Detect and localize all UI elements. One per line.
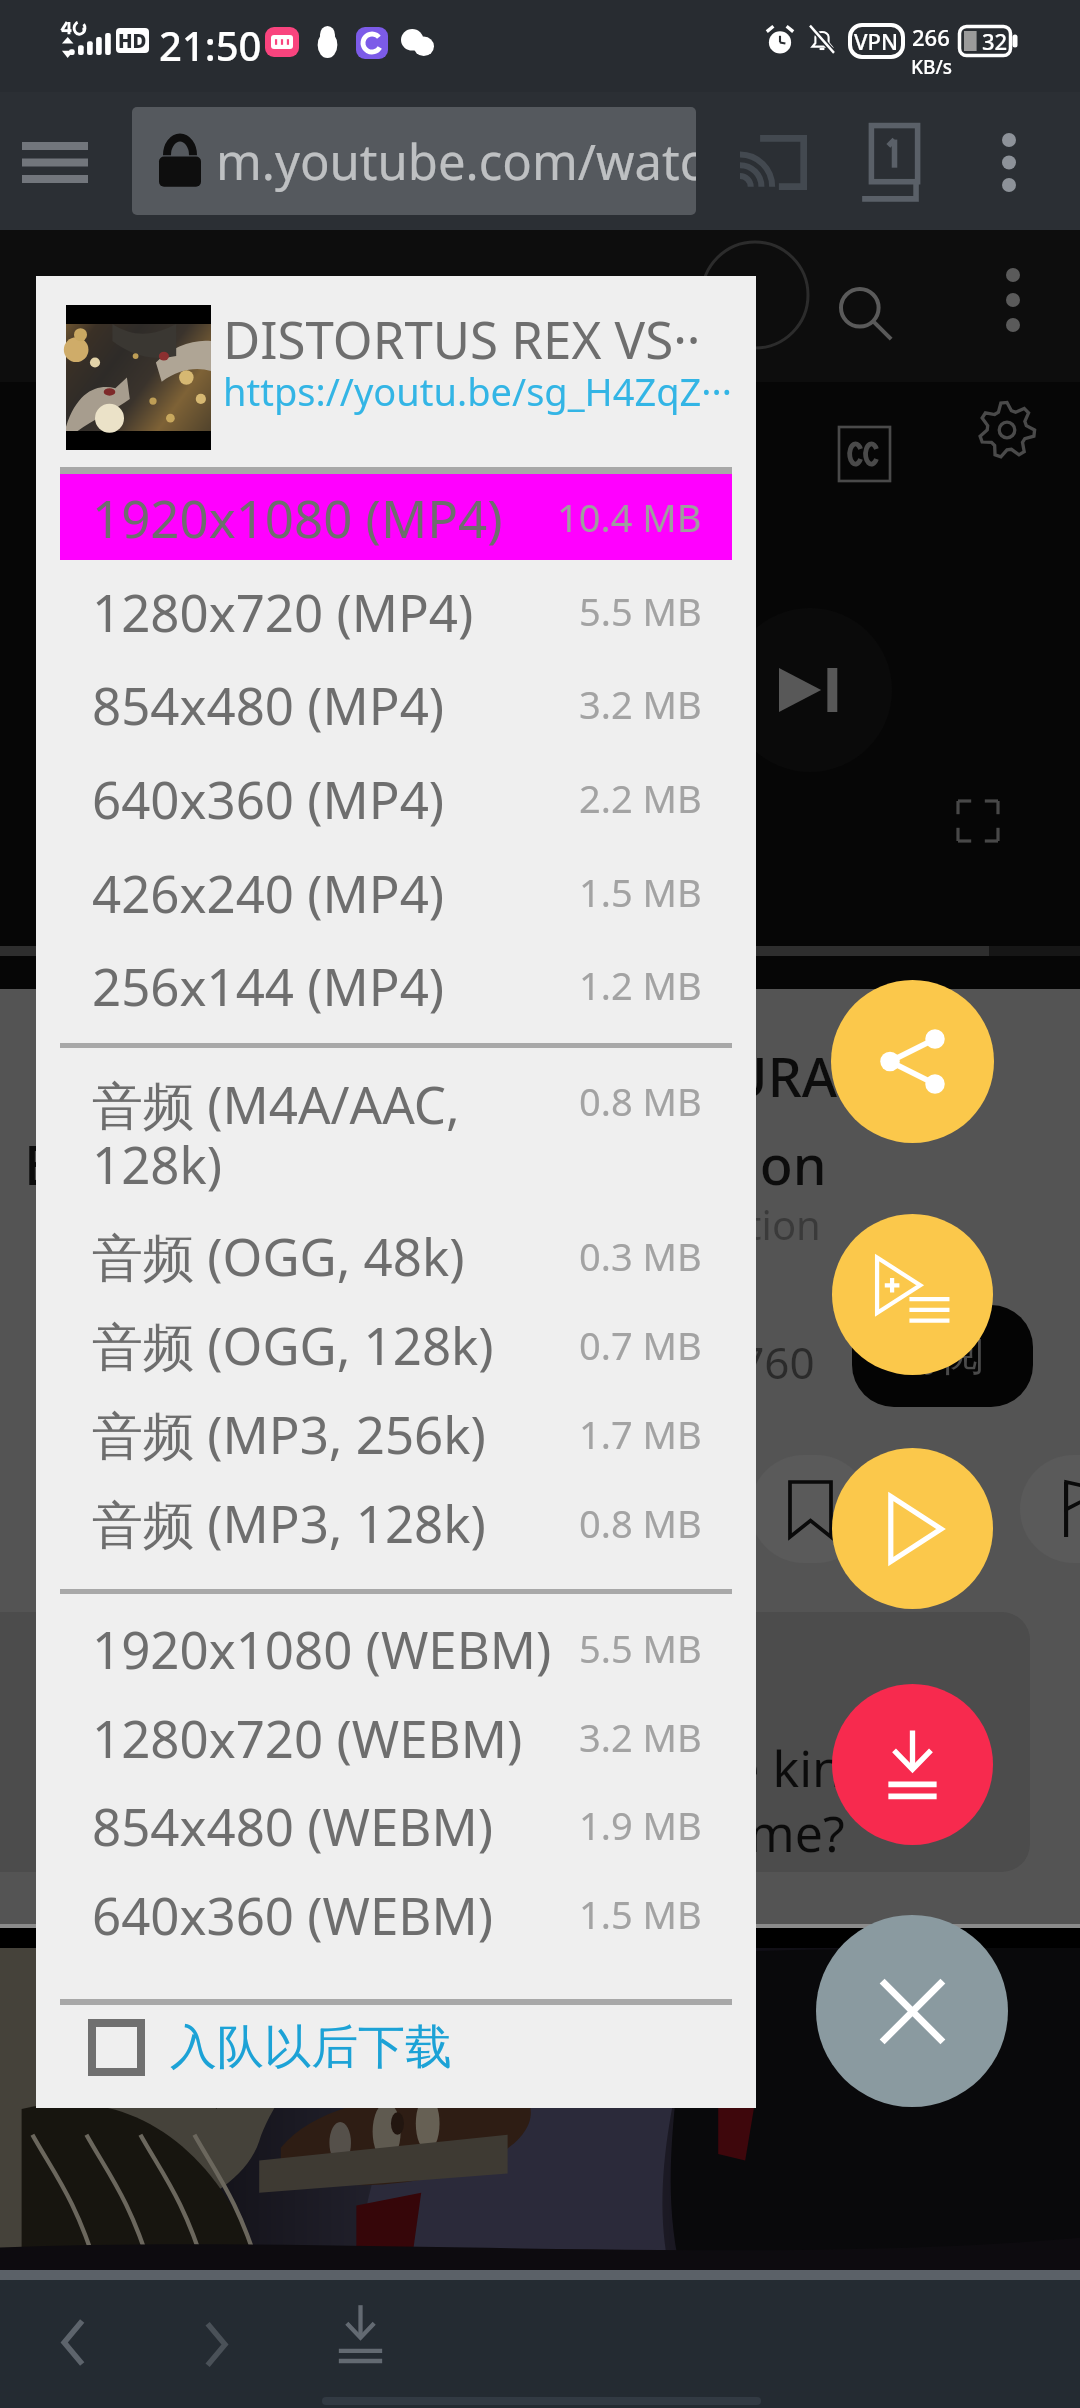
staticText: 音频 (MP3, 256k) [92, 1399, 579, 1469]
button[interactable]: Download [832, 1684, 993, 1845]
staticText: 32 [982, 26, 1008, 56]
button[interactable]: m.youtube.com/watc [132, 107, 696, 215]
staticText: 0.8 MB [579, 1497, 702, 1549]
staticText: 订阅 [901, 1330, 985, 1383]
staticText: 640x360 (MP4) [92, 764, 579, 833]
staticText: Epic Dinosaur Battle Animation [24, 1127, 827, 1201]
staticText: 1.5 MB [579, 866, 702, 918]
button[interactable]: Settings [977, 400, 1037, 460]
button[interactable]: 音频 (MP3, 256k) [92, 1390, 702, 1478]
staticText: 21:50 [159, 18, 262, 72]
button[interactable]: Back [33, 2302, 113, 2382]
staticText: HD [118, 28, 147, 53]
button[interactable]: Save [766, 1459, 854, 1559]
staticText: 1.7 MB [579, 1408, 702, 1460]
staticText: 266 [912, 22, 950, 52]
staticText: 音频 (M4A/AAC, 128k) [92, 1069, 460, 1199]
staticText: 1920x1080 (MP4) [92, 483, 557, 552]
staticText: 10.4 MB [557, 491, 702, 543]
staticText: 854x480 (WEBM) [92, 1791, 579, 1860]
staticText: 1280x720 (MP4) [92, 577, 579, 646]
staticText: 426x240 (MP4) [92, 858, 579, 927]
staticText: 1.5 MB [579, 1888, 702, 1940]
button[interactable]: 音频 (M4A/AAC, 128k) [92, 1069, 702, 1219]
button[interactable]: 256x144 (MP4) [92, 941, 702, 1029]
staticText: 5.5 MB [579, 1622, 702, 1674]
staticText: 1.2M views · Jurassic dinosaur animation [63, 1197, 821, 1251]
staticText: 3.2 MB [579, 1711, 702, 1763]
staticText: m.youtube.com/watc [216, 128, 696, 195]
staticText: DISTORTUS REX VS·· [223, 304, 701, 373]
staticText: 0.7 MB [579, 1319, 702, 1371]
button[interactable]: Share [831, 980, 994, 1143]
staticText: 入队以后下载 [170, 2018, 452, 2077]
button[interactable]: Play [832, 1448, 993, 1609]
staticText: 音频 (MP3, 128k) [92, 1488, 579, 1558]
staticText: 5.5 MB [579, 585, 702, 637]
button[interactable]: Report [1038, 1459, 1080, 1559]
button[interactable]: Add to playlist [832, 1214, 993, 1375]
staticText: 音频 (OGG, 128k) [92, 1310, 579, 1380]
staticText: 854x480 (MP4) [92, 670, 579, 739]
staticText: of the jungle. Who will overcome? [56, 1799, 845, 1867]
staticText: 256x144 (MP4) [92, 951, 579, 1020]
button[interactable]: Menu [8, 124, 102, 200]
button[interactable]: Close [816, 1915, 1008, 2107]
button[interactable]: Search [810, 258, 920, 368]
button[interactable]: 426x240 (MP4) [92, 848, 702, 936]
button[interactable]: Next video [728, 608, 892, 772]
button[interactable]: 音频 (MP3, 128k) [92, 1479, 702, 1567]
staticText: 640x360 (WEBM) [92, 1880, 579, 1949]
staticText: https://youtu.be/sg_H4ZqZ··· [223, 365, 732, 417]
staticText: 1760 [714, 1332, 815, 1392]
button[interactable]: Like [596, 1319, 676, 1399]
button[interactable]: Captions [812, 402, 916, 506]
staticText: 0.3 MB [579, 1230, 702, 1282]
button[interactable]: 854x480 (WEBM) [92, 1781, 702, 1869]
button[interactable]: 1280x720 (MP4) [92, 567, 702, 655]
staticText: 1280x720 (WEBM) [92, 1703, 579, 1772]
button[interactable]: Fullscreen [945, 788, 1011, 854]
staticText: Dinosaurs fight to become the king [46, 1734, 874, 1802]
button[interactable]: Cast [726, 119, 821, 205]
button[interactable]: 1280x720 (WEBM) [92, 1693, 702, 1781]
staticText: 2.2 MB [579, 772, 702, 824]
staticText: VPN [854, 26, 899, 56]
button[interactable]: SCARY JURASSIC DINOSAURA [0, 989, 1080, 1269]
button[interactable]: 640x360 (WEBM) [92, 1870, 702, 1958]
staticText: 音频 (OGG, 48k) [92, 1221, 579, 1291]
staticText: 1920x1080 (WEBM) [92, 1614, 579, 1683]
button[interactable]: 640x360 (MP4) [92, 754, 702, 842]
button[interactable]: Forward [176, 2304, 256, 2384]
staticText: SCARY JURASSIC DINOSAURA [89, 1039, 838, 1113]
button[interactable]: Dinosaurs fight to become the king [0, 1612, 1030, 1872]
button[interactable]: 1920x1080 (WEBM) [92, 1604, 702, 1692]
button[interactable]: DISTORTUS REX VS·· [223, 296, 743, 436]
button[interactable]: More [975, 262, 1051, 338]
button[interactable]: 入队以后下载 [88, 2004, 588, 2090]
button[interactable]: 订阅 [852, 1305, 1033, 1407]
staticText: 1.9 MB [579, 1799, 702, 1851]
button[interactable]: More options [981, 123, 1037, 201]
staticText: 0.8 MB [579, 1075, 702, 1127]
staticText: 3.2 MB [579, 678, 702, 730]
button[interactable] [66, 305, 211, 450]
staticText: KB/s [911, 54, 952, 80]
button[interactable]: Tabs [846, 114, 943, 212]
button[interactable]: 音频 (OGG, 128k) [92, 1301, 702, 1389]
button[interactable]: 音频 (OGG, 48k) [92, 1212, 702, 1300]
button[interactable]: 1920x1080 (MP4) [60, 474, 732, 560]
staticText: 1.2 MB [579, 959, 702, 1011]
button[interactable]: 854x480 (MP4) [92, 660, 702, 748]
button[interactable]: Downloads [318, 2297, 403, 2371]
